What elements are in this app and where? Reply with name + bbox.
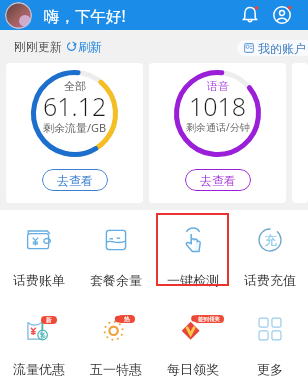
button[interactable]: 签到领奖 xyxy=(154,314,231,377)
button[interactable]: 更多 xyxy=(231,314,308,377)
staticText: 刷新 xyxy=(78,39,102,54)
staticText: 每日领奖 xyxy=(167,361,219,377)
button[interactable]: 充 xyxy=(231,225,308,288)
staticText: 我的账户 xyxy=(258,41,306,56)
button[interactable]: 新 xyxy=(0,314,77,377)
button[interactable]: 话费账单 xyxy=(0,225,77,288)
staticText: 1018 xyxy=(189,89,247,123)
button[interactable]: 全部 xyxy=(6,63,143,203)
staticText: 新 xyxy=(46,316,52,324)
staticText: 五一特惠 xyxy=(90,361,142,377)
staticText: 去查看 xyxy=(200,173,236,188)
button[interactable]: Notifications xyxy=(237,2,263,28)
staticText: 语音 xyxy=(207,79,229,93)
staticText: 去查看 xyxy=(57,173,93,188)
button[interactable]: 套餐余量 xyxy=(77,225,154,288)
staticText: 热 xyxy=(124,315,130,323)
staticText: 话费账单 xyxy=(13,272,65,288)
button[interactable]: 去查看 xyxy=(42,169,108,191)
button[interactable]: 语音 xyxy=(149,63,286,203)
staticText: 剩余通话/分钟 xyxy=(186,120,250,134)
button[interactable]: 一键检测 xyxy=(154,225,231,288)
button[interactable]: Profile avatar xyxy=(5,2,32,29)
button[interactable]: Account xyxy=(269,2,295,28)
staticText: 61.12 xyxy=(43,89,107,123)
button[interactable]: 热 xyxy=(77,314,154,377)
staticText: 刚刚更新 xyxy=(14,39,62,54)
button[interactable]: 我的账户 xyxy=(237,40,308,56)
staticText: 更多 xyxy=(257,361,283,377)
staticText: 话费充值 xyxy=(244,272,296,288)
staticText: 充 xyxy=(264,232,277,248)
staticText: 流量优惠 xyxy=(13,361,65,377)
staticText: 嗨，下午好! xyxy=(44,5,126,26)
staticText: 全部 xyxy=(64,79,86,93)
button[interactable]: 去查看 xyxy=(185,169,251,191)
staticText: 一键检测 xyxy=(167,272,219,288)
staticText: 签到领奖 xyxy=(198,316,220,323)
staticText: 套餐余量 xyxy=(90,272,142,288)
staticText: 剩余流量/GB xyxy=(43,120,107,135)
